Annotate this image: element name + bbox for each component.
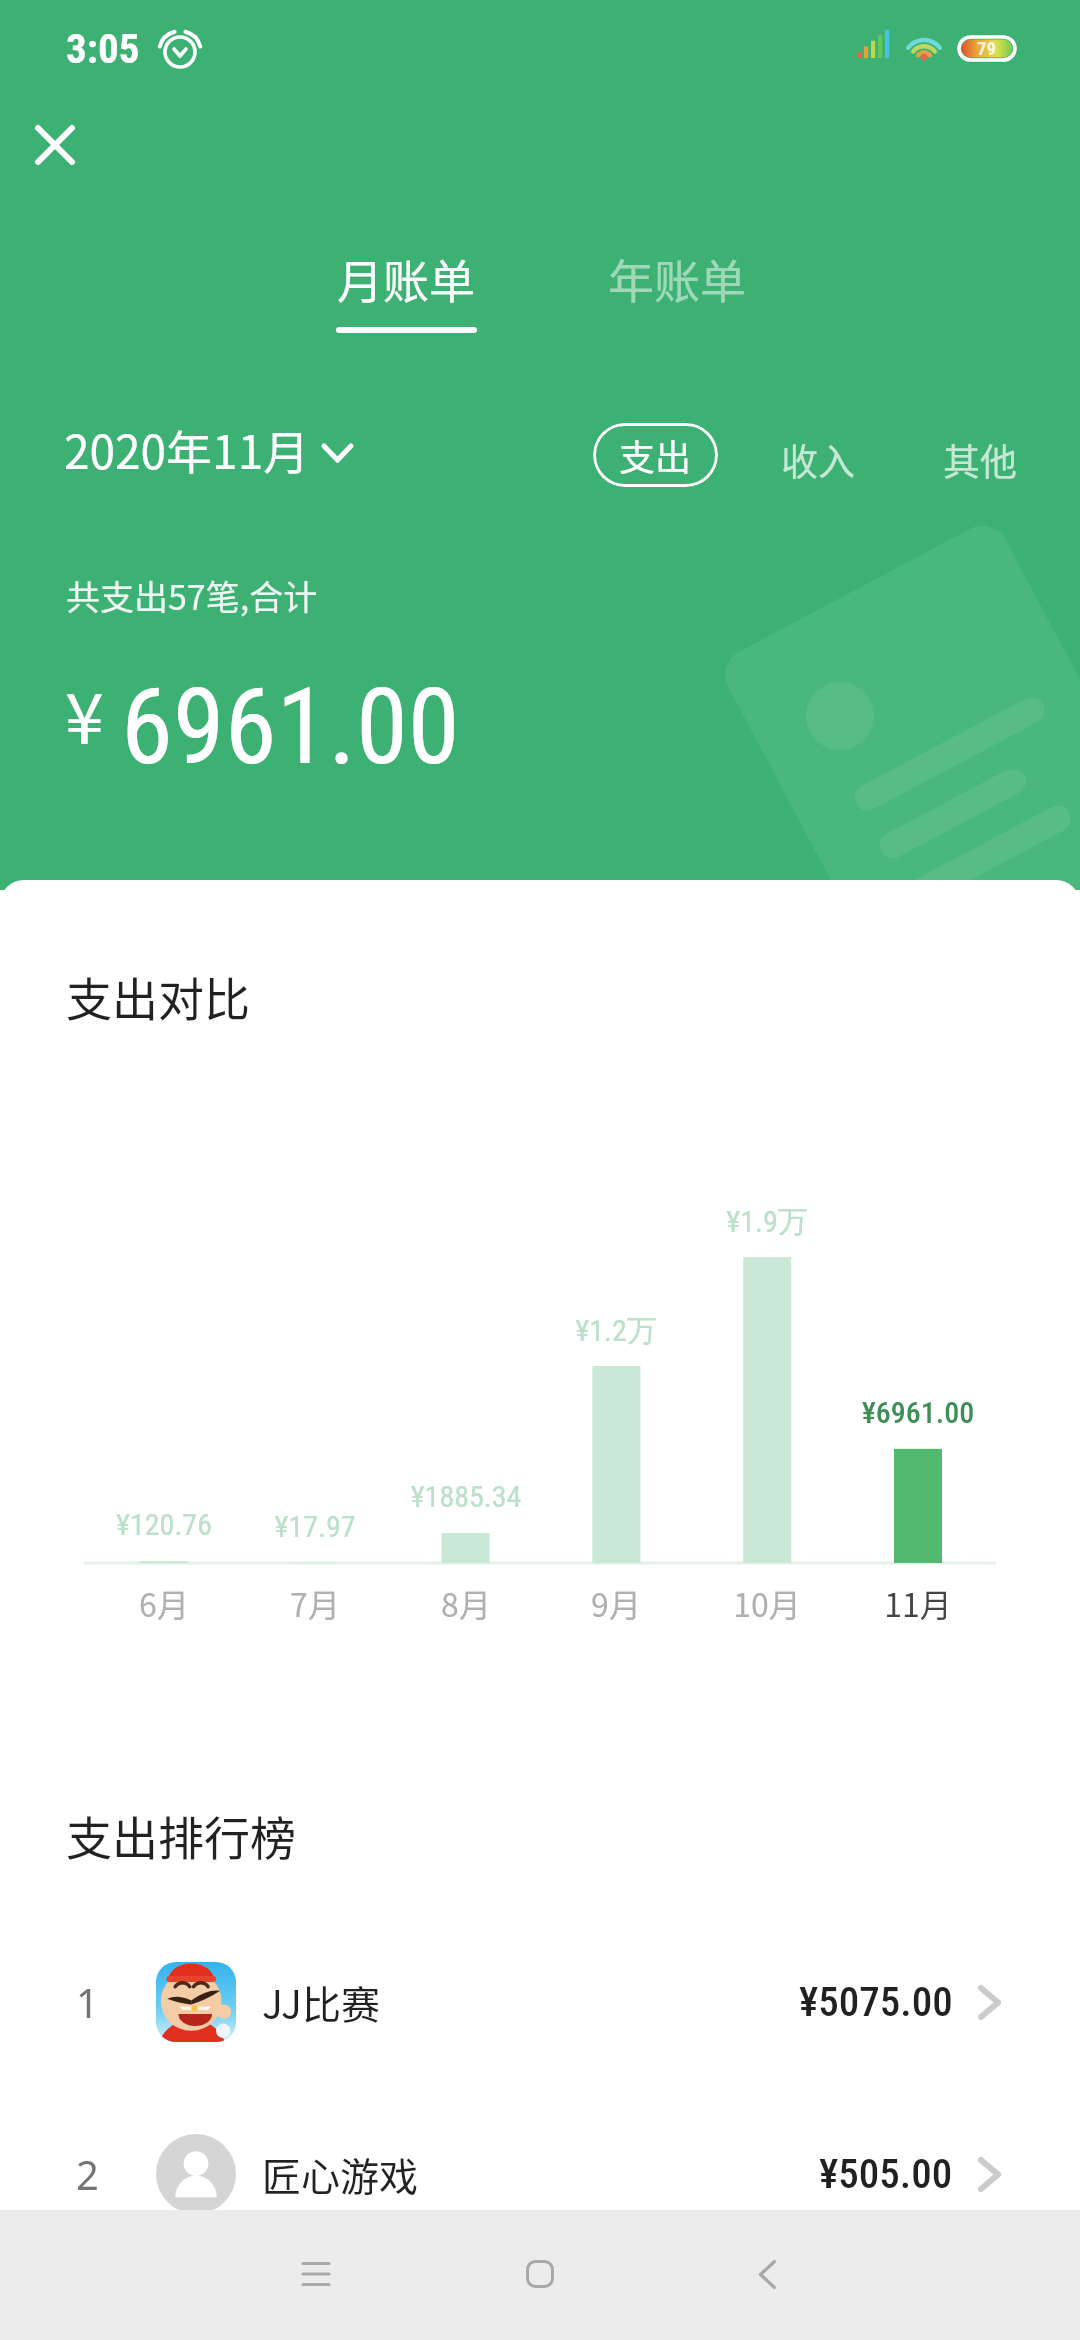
button[interactable]: Home (485, 2224, 595, 2324)
staticText: ¥6961.00 (798, 1395, 1038, 1430)
button[interactable]: Close (5, 95, 105, 195)
staticText: 9月 (496, 1580, 736, 1626)
button[interactable]: 年账单 (577, 245, 777, 333)
button[interactable]: 支出 (593, 423, 718, 487)
staticText: ¥1.9万 (647, 1203, 887, 1241)
staticText: 共支出57笔,合计 (66, 571, 318, 620)
staticText: ¥120.76 (44, 1507, 284, 1542)
staticText: 月账单 (306, 245, 506, 312)
staticText: ¥ (65, 663, 104, 764)
staticText: 1 (76, 1975, 99, 2029)
button[interactable]: 月账单 (306, 245, 506, 333)
button[interactable]: Recent apps (261, 2224, 371, 2324)
button[interactable]: 2020年11月 (52, 406, 365, 493)
staticText: 2 (76, 2147, 99, 2201)
staticText: 收入 (781, 433, 855, 487)
staticText: ¥1885.34 (346, 1479, 586, 1514)
staticText: ¥1.2万 (496, 1312, 736, 1350)
staticText: 2020年11月 (64, 416, 310, 483)
staticText: 10月 (647, 1580, 887, 1626)
staticText: 6961.00 (121, 666, 460, 789)
staticText: 7月 (195, 1580, 435, 1626)
staticText: ¥5075.00 (799, 1978, 953, 2026)
staticText: ¥17.97 (195, 1509, 435, 1544)
staticText: 79 (977, 37, 997, 59)
staticText: 3:05 (66, 25, 140, 73)
button[interactable]: 其他 (929, 419, 1031, 501)
button[interactable]: 2 (0, 2090, 1080, 2210)
staticText: 11月 (798, 1580, 1038, 1626)
button[interactable]: Back (712, 2224, 822, 2324)
button[interactable]: 收入 (767, 419, 869, 501)
staticText: 8月 (346, 1580, 586, 1626)
staticText: JJ比赛 (262, 1974, 380, 2030)
staticText: 其他 (943, 433, 1017, 487)
staticText: 6月 (44, 1580, 284, 1626)
staticText: ¥505.00 (819, 2150, 953, 2198)
button[interactable]: 1 (0, 1918, 1080, 2086)
staticText: 支出排行榜 (66, 1802, 296, 1869)
staticText: 匠心游戏 (262, 2146, 419, 2202)
staticText: 支出对比 (66, 963, 250, 1030)
staticText: 支出 (619, 429, 692, 481)
staticText: 年账单 (577, 245, 777, 312)
